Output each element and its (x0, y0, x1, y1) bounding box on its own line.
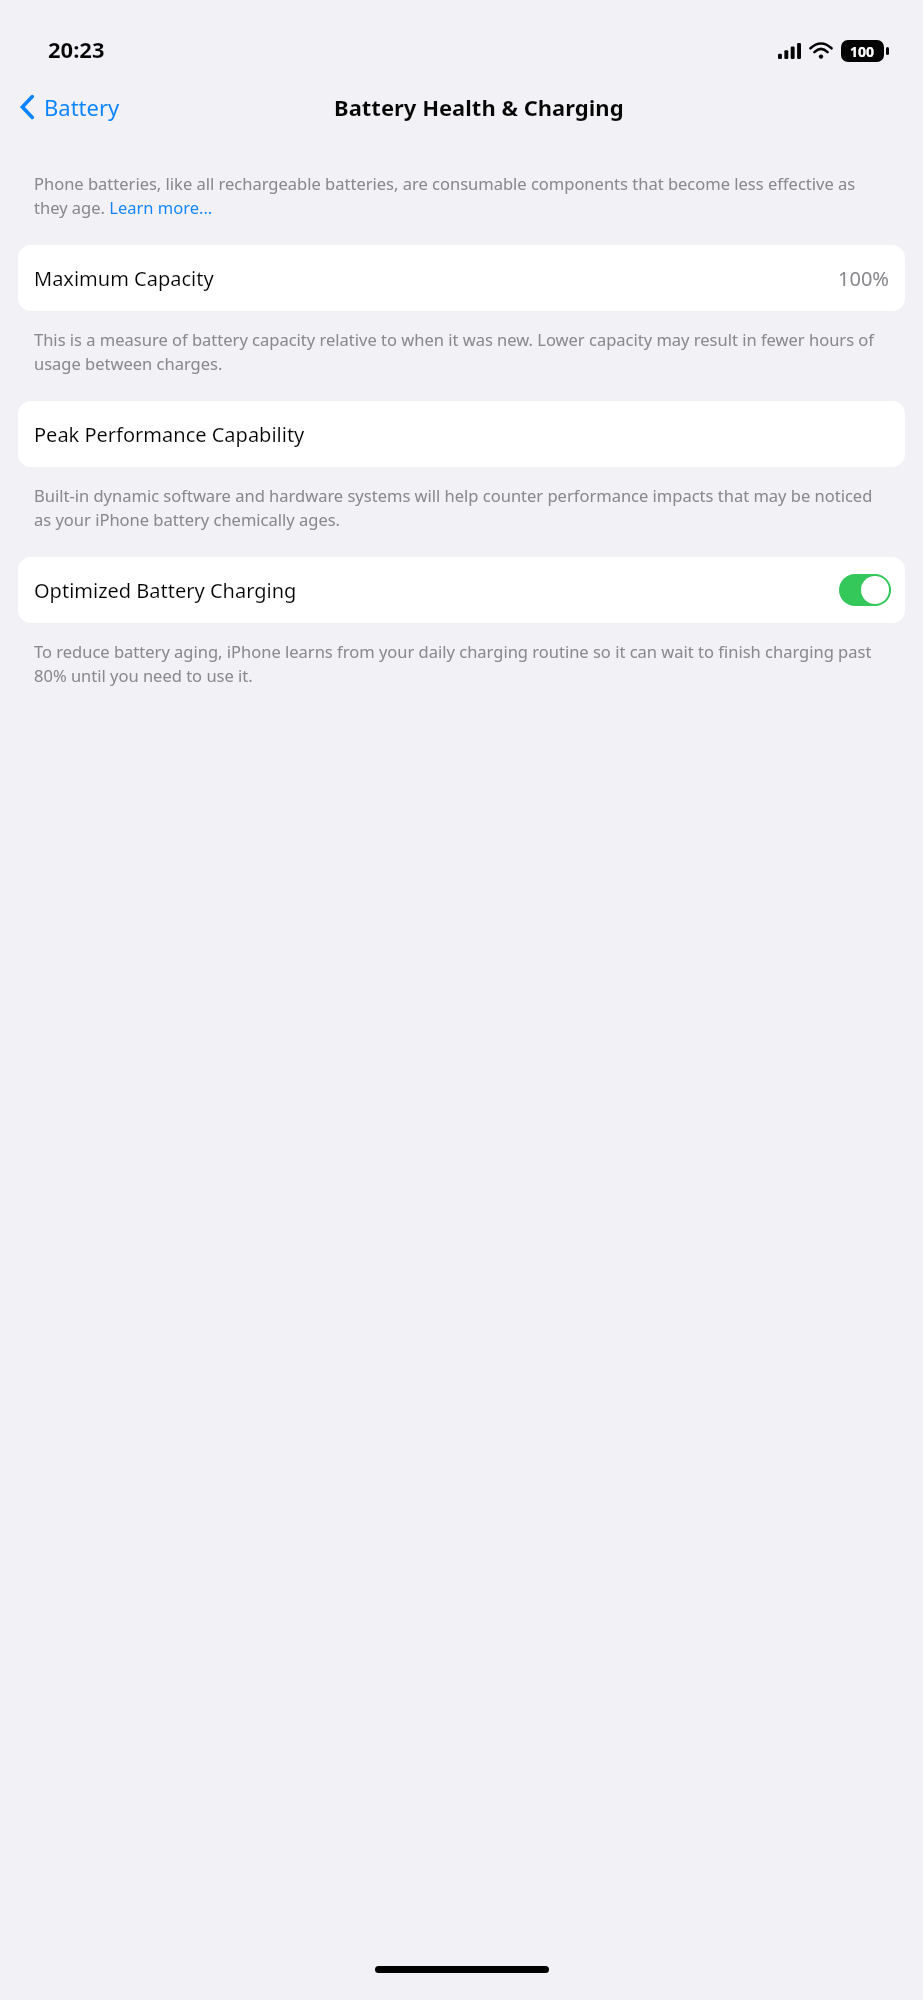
staticText: This is a measure of battery capacity re… (34, 328, 889, 375)
button[interactable]: Peak Performance Capability (18, 401, 905, 467)
staticText: To reduce battery aging, iPhone learns f… (34, 640, 889, 687)
button[interactable]: Maximum Capacity (18, 245, 905, 311)
staticText: Built-in dynamic software and hardware s… (34, 484, 889, 531)
staticText: Optimized Battery Charging (34, 577, 297, 604)
staticText: Battery Health & Charging (334, 92, 624, 122)
staticText: 100 (850, 42, 875, 61)
staticText: Phone batteries, like all rechargeable b… (34, 172, 889, 219)
button[interactable]: Optimized Battery Charging (18, 557, 905, 623)
staticText: Battery (44, 92, 120, 122)
staticText: 20:23 (48, 34, 105, 64)
staticText: Maximum Capacity (34, 265, 214, 292)
staticText: Peak Performance Capability (34, 421, 305, 448)
button[interactable]: Optimized Battery Charging toggle (839, 574, 891, 606)
button[interactable]: Battery (14, 86, 126, 128)
staticText: 100% (838, 265, 889, 292)
